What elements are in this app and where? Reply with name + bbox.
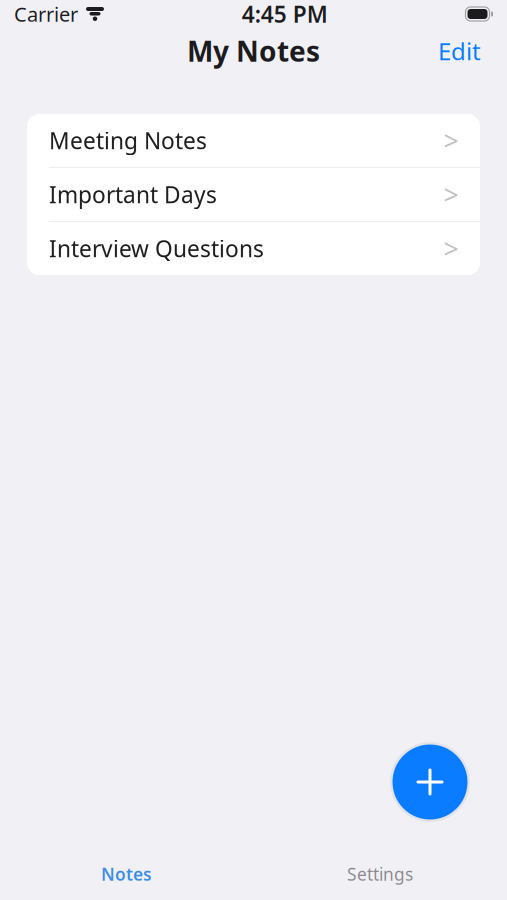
staticText: Notes	[101, 862, 152, 885]
staticText: Meeting Notes	[49, 125, 207, 155]
staticText: Settings	[347, 862, 413, 885]
button[interactable]: Settings	[253, 854, 507, 894]
staticText: >	[443, 231, 458, 266]
staticText: My Notes	[187, 32, 320, 70]
button[interactable]: Edit	[424, 25, 495, 77]
staticText: Edit	[438, 35, 481, 67]
staticText: 4:45 PM	[242, 0, 328, 29]
staticText: Important Days	[49, 179, 217, 209]
button[interactable]: Important Days	[27, 168, 480, 221]
staticText: >	[443, 177, 458, 212]
staticText: >	[443, 123, 458, 158]
staticText: Carrier	[14, 1, 78, 27]
button[interactable]: Add note	[390, 742, 470, 822]
button[interactable]: Notes	[0, 854, 253, 894]
button[interactable]: Interview Questions	[27, 222, 480, 275]
staticText: Interview Questions	[49, 233, 264, 263]
button[interactable]: Meeting Notes	[27, 114, 480, 167]
